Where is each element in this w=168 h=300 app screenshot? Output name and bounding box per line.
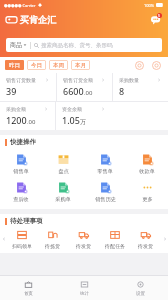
staticText: 1200 [6,114,27,126]
staticText: .00 [84,89,93,97]
staticText: 收款单 [139,168,155,175]
staticText: 本周 [53,62,64,69]
staticText: ●●●●● Carrier [4,3,36,8]
staticText: .00 [27,118,36,126]
staticText: 统计 [80,291,89,297]
staticText: 盘点 [58,168,69,175]
staticText: 买肯企汇 [20,14,56,25]
button[interactable]: 今日 [27,60,46,70]
staticText: 采购单 [55,196,71,203]
staticText: 搜索商品名称、货号、条形码 [41,42,113,49]
staticText: 8 [119,85,125,97]
button[interactable]: 销售单 [0,152,42,176]
staticText: 资金余额 [62,106,82,112]
staticText: 本月 [75,62,86,69]
button[interactable]: Filter [152,61,161,70]
staticText: 昨日 [9,62,20,69]
staticText: 5 [158,13,161,18]
staticText: 查后收 [13,196,29,203]
staticText: 待拣货 [45,243,60,249]
staticText: 待配任务 [105,243,125,249]
button[interactable]: 首页 [0,276,56,300]
button[interactable]: 采购数量 [113,73,168,101]
staticText: 商品 [10,41,22,49]
staticText: 100% [144,3,155,8]
button[interactable]: 本周 [49,60,68,70]
staticText: 设置 [136,291,145,297]
button[interactable]: 待发货 [130,229,161,249]
staticText: 扫码领单 [12,243,32,249]
staticText: 快捷操作 [10,138,36,146]
other: Logo [6,14,17,25]
button[interactable]: 销售订货金额 [57,73,112,101]
button[interactable]: 昨日 [5,60,24,70]
button[interactable]: 待配任务 [99,229,130,249]
button[interactable]: 盘点 [42,152,84,176]
staticText: 首页 [24,291,33,297]
staticText: 39 [6,85,17,97]
staticText: 待处理事项 [10,217,43,225]
button[interactable]: 资金余额 [56,102,112,130]
button[interactable]: 统计 [56,276,112,300]
staticText: 万 [80,118,86,126]
button[interactable]: 设置 [112,276,168,300]
button[interactable]: 商品 [6,38,162,52]
staticText: 采购数量 [119,77,139,83]
staticText: 待发货 [138,243,153,249]
staticText: 销售单 [13,168,29,175]
button[interactable]: 收款单 [126,152,168,176]
button[interactable]: 更多 [126,180,168,204]
button[interactable]: Previous [0,230,7,248]
staticText: 6600 [63,85,84,97]
button[interactable]: 待拣货 [37,229,68,249]
staticText: 销售订货数量 [6,77,36,83]
staticText: 今日 [31,62,42,69]
button[interactable]: 查后收 [0,180,42,204]
staticText: 零售单 [97,168,113,175]
button[interactable]: 扫码领单 [7,229,37,249]
button[interactable]: Messages [149,13,162,26]
button[interactable]: 销售订货数量 [0,73,56,101]
staticText: 采购金额 [6,106,26,112]
button[interactable]: Calendar [135,61,144,70]
staticText: 1.05 [62,114,80,126]
button[interactable]: 销售历史 [84,180,126,204]
button[interactable]: 待发货 [68,229,99,249]
staticText: 更多 [142,196,153,203]
button[interactable]: 采购单 [42,180,84,204]
button[interactable]: Next [161,230,168,248]
staticText: 待发货 [76,243,91,249]
button[interactable]: 零售单 [84,152,126,176]
staticText: 销售订货金额 [63,77,93,83]
staticText: 销售历史 [95,196,116,203]
button[interactable]: 本月 [71,60,90,70]
button[interactable]: 采购金额 [0,102,55,130]
